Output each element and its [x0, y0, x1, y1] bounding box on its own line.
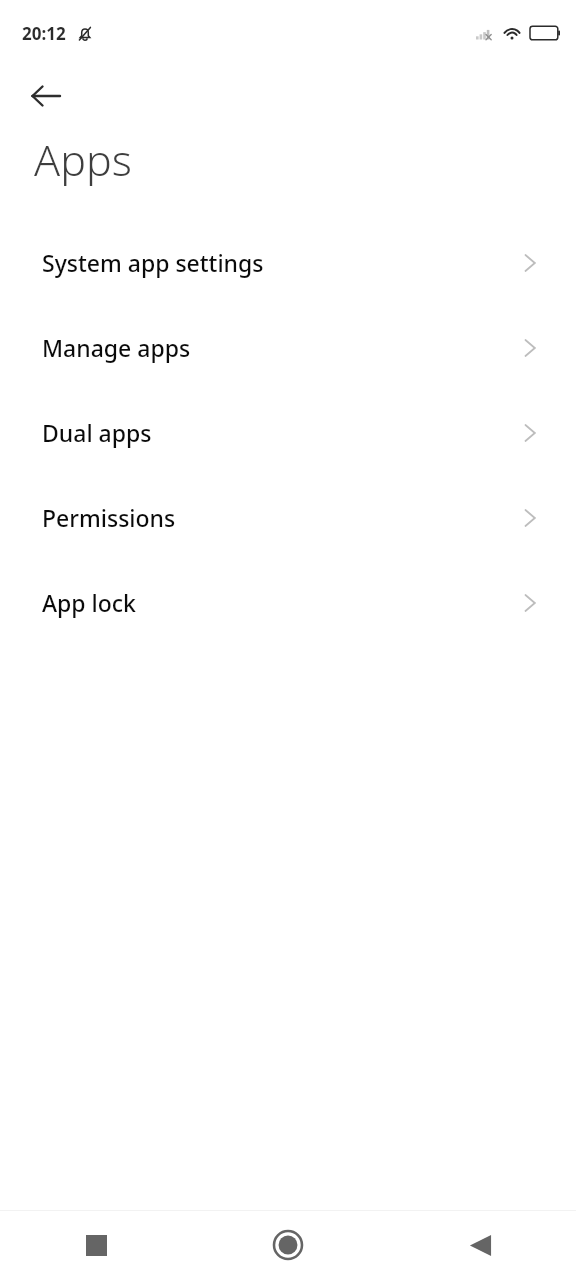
button[interactable]: App lock	[0, 560, 576, 645]
button[interactable]: Back	[384, 1217, 576, 1273]
button[interactable]: Back	[22, 72, 70, 120]
staticText: Permissions	[42, 502, 176, 533]
staticText: 20:12	[22, 22, 66, 45]
button[interactable]: Permissions	[0, 475, 576, 560]
button[interactable]: Home	[192, 1217, 384, 1273]
staticText: System app settings	[42, 247, 264, 278]
button[interactable]: Recent apps	[0, 1217, 192, 1273]
staticText: Manage apps	[42, 332, 191, 363]
button[interactable]: Dual apps	[0, 390, 576, 475]
staticText: Apps	[34, 130, 132, 189]
button[interactable]: System app settings	[0, 220, 576, 305]
staticText: App lock	[42, 587, 136, 618]
button[interactable]: Manage apps	[0, 305, 576, 390]
staticText: Dual apps	[42, 417, 152, 448]
